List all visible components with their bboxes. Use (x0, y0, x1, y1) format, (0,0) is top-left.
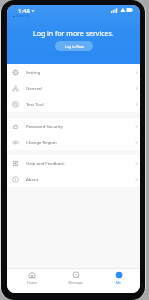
button[interactable]: Setting (7, 64, 140, 80)
staticText: Change Region (26, 139, 57, 145)
button[interactable]: Home (10, 269, 54, 286)
button[interactable]: Me (97, 269, 140, 286)
staticText: Help and Feedback (26, 160, 65, 166)
button[interactable]: Message (54, 269, 97, 286)
staticText: Home (27, 280, 37, 285)
staticText: Me (116, 280, 121, 285)
button[interactable]: General (7, 80, 140, 96)
staticText: Log in for more services. (33, 29, 114, 39)
button[interactable]: About (7, 171, 140, 187)
staticText: Message (68, 280, 83, 285)
button[interactable]: Password Security (7, 118, 140, 134)
staticText: 1:48 (18, 7, 30, 15)
staticText: Search (16, 13, 30, 19)
staticText: Setting (26, 69, 41, 75)
staticText: About (26, 176, 39, 182)
button[interactable]: Change Region (7, 134, 140, 150)
staticText: Test Tool (26, 101, 44, 107)
button[interactable]: Log in Now (55, 41, 93, 51)
button[interactable]: Help and Feedback (7, 155, 140, 171)
button[interactable]: Test Tool (7, 96, 140, 112)
staticText: Password Security (26, 123, 63, 129)
staticText: General (26, 85, 42, 91)
staticText: Log in Now (65, 44, 84, 49)
